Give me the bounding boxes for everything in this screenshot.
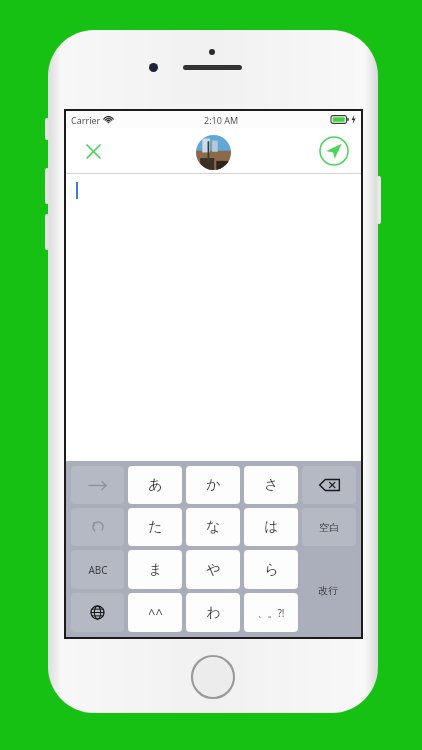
button[interactable]: Profile photo [196, 135, 231, 170]
staticText: あ [148, 476, 163, 494]
staticText: 2:10 AM [204, 114, 239, 126]
button[interactable]: か [186, 466, 240, 504]
button[interactable]: Close [80, 138, 106, 164]
button[interactable]: Next candidate [71, 466, 124, 504]
button[interactable]: Undo [71, 508, 124, 546]
button[interactable]: Return [300, 548, 356, 632]
staticText: か [206, 476, 221, 494]
button[interactable]: わ [186, 593, 240, 632]
staticText: ら [264, 561, 279, 579]
button[interactable]: Return [302, 552, 356, 591]
staticText: わ [206, 604, 221, 622]
staticText: な [206, 518, 221, 536]
staticText: ^^ [148, 604, 163, 622]
staticText: 、。?! [257, 606, 285, 620]
staticText: 改行 [318, 584, 338, 597]
button[interactable]: 改行 [302, 593, 356, 632]
staticText: Carrier [71, 114, 101, 126]
button[interactable]: ま [128, 550, 182, 589]
button[interactable]: さ [244, 466, 298, 504]
button[interactable]: ABC [71, 550, 124, 589]
staticText: ま [148, 561, 163, 579]
button[interactable]: 空白 [302, 508, 356, 546]
button[interactable]: な [186, 508, 240, 546]
button[interactable]: Send [319, 136, 349, 166]
staticText: 空白 [319, 521, 339, 534]
staticText: や [206, 561, 221, 579]
staticText: ABC [88, 563, 108, 577]
button[interactable]: Switch keyboard [71, 593, 124, 632]
button[interactable]: た [128, 508, 182, 546]
button[interactable]: ^^ [128, 593, 182, 632]
button[interactable]: や [186, 550, 240, 589]
staticText: さ [264, 476, 279, 494]
staticText: た [148, 518, 163, 536]
staticText: は [264, 518, 279, 536]
button[interactable]: は [244, 508, 298, 546]
button[interactable]: Delete [302, 466, 356, 504]
button[interactable]: あ [128, 466, 182, 504]
button[interactable]: 、。?! [244, 593, 298, 632]
button[interactable]: ら [244, 550, 298, 589]
